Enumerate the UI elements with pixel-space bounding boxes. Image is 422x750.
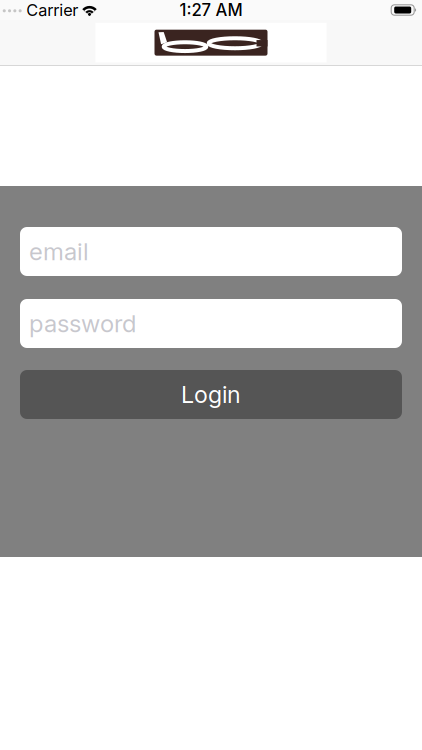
textField[interactable]: email <box>20 227 402 276</box>
button[interactable]: password <box>20 299 402 348</box>
staticText: email <box>29 237 89 266</box>
textField[interactable]: password <box>20 299 402 348</box>
staticText: Carrier <box>26 0 78 20</box>
button[interactable]: email <box>20 227 402 276</box>
staticText: 1:27 AM <box>179 0 242 20</box>
staticText: password <box>29 309 136 338</box>
button[interactable]: Login <box>20 370 402 419</box>
staticText: Login <box>181 380 241 409</box>
